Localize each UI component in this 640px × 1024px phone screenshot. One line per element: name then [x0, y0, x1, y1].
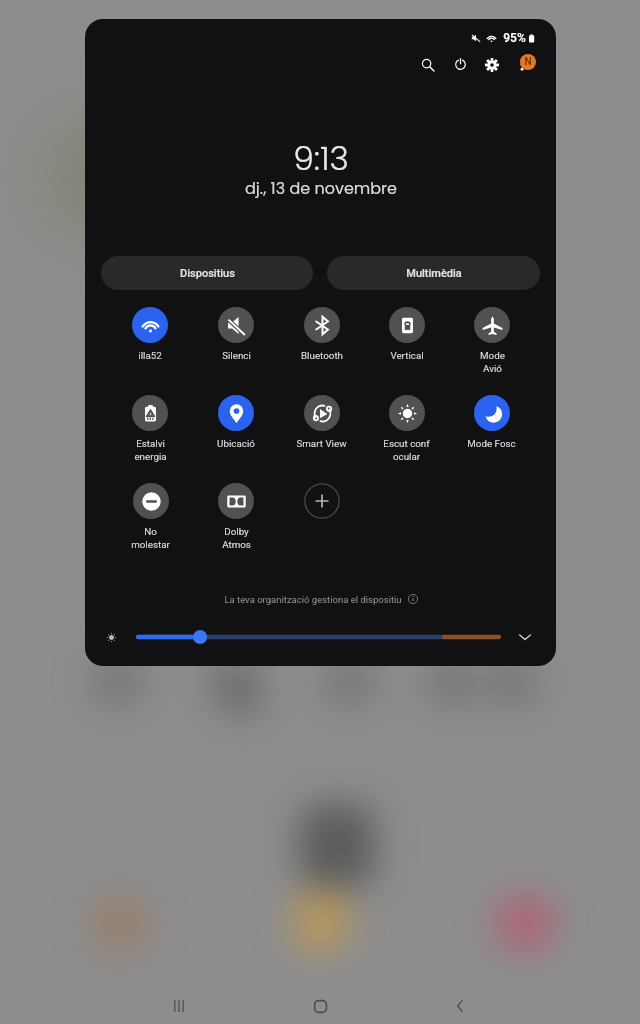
staticText: Vertical	[390, 350, 424, 361]
button[interactable]: Estalvi energia	[132, 395, 168, 462]
staticText: Smart View	[296, 438, 347, 449]
staticText: Estalvi energia	[134, 438, 167, 462]
button[interactable]: Brightness	[100, 626, 122, 648]
button[interactable]: Mode Avió	[474, 307, 510, 374]
button[interactable]: Add	[304, 483, 340, 519]
button[interactable]: Silenci	[218, 307, 254, 361]
button[interactable]: Home	[296, 988, 344, 1024]
staticText: Silenci	[222, 350, 251, 361]
button[interactable]: Mode Fosc	[467, 395, 516, 449]
button[interactable]: No molestar	[131, 483, 170, 550]
button[interactable]: Power	[444, 51, 476, 78]
staticText: La teva organització gestiona el disposi…	[224, 594, 402, 605]
staticText: N	[524, 56, 532, 68]
button[interactable]: Bluetooth	[301, 307, 343, 361]
button[interactable]: Multimèdia	[327, 256, 540, 290]
button[interactable]: Escut conf ocular	[383, 395, 430, 462]
button[interactable]	[138, 626, 499, 648]
staticText: No molestar	[131, 526, 170, 550]
button[interactable]: Back	[436, 988, 484, 1024]
button[interactable]: Search	[412, 51, 444, 78]
button[interactable]: Smart View	[296, 395, 347, 449]
button[interactable]: Expand	[512, 624, 538, 650]
staticText: Dispositius	[180, 267, 235, 280]
button[interactable]: Settings	[476, 51, 508, 78]
staticText: Dolby Atmos	[222, 526, 251, 550]
button[interactable]: Recents	[155, 988, 203, 1024]
staticText: illa52	[138, 350, 162, 361]
button[interactable]: Dolby Atmos	[218, 483, 254, 550]
button[interactable]: More options	[508, 51, 540, 78]
staticText: Bluetooth	[301, 350, 343, 361]
button[interactable]: illa52	[132, 307, 168, 361]
staticText: Multimèdia	[406, 267, 462, 280]
staticText: Mode Avió	[480, 350, 505, 374]
staticText: Escut conf ocular	[383, 438, 430, 462]
staticText: dj., 13 de novembre	[245, 177, 397, 199]
button[interactable]: Ubicació	[217, 395, 255, 449]
staticText: Mode Fosc	[467, 438, 516, 449]
staticText: Ubicació	[217, 438, 255, 449]
staticText: 95%	[503, 31, 526, 45]
button[interactable]: Vertical	[389, 307, 425, 361]
staticText: 9:13	[293, 135, 349, 181]
button[interactable]: Dispositius	[101, 256, 313, 290]
